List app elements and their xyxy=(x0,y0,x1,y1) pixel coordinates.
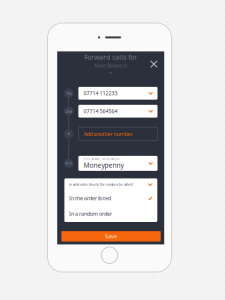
button[interactable]: In what order should the numbers be call… xyxy=(64,178,157,191)
button[interactable]: If no answer, send calls to: xyxy=(78,156,157,171)
button[interactable]: 07714 112233 xyxy=(78,87,157,100)
staticText: If no answer, send calls to: xyxy=(84,157,121,161)
staticText: Matt Bulwash xyxy=(94,62,127,69)
button[interactable]: Save xyxy=(61,231,161,241)
staticText: to: xyxy=(109,70,113,75)
staticText: In what order should the numbers be call… xyxy=(69,183,133,186)
staticText: + xyxy=(67,130,70,137)
button[interactable]: In a random order xyxy=(64,206,157,222)
button[interactable]: 07714 564564 xyxy=(78,105,157,118)
staticText: 07714 564564 xyxy=(84,108,118,115)
staticText: 2nd xyxy=(66,108,72,114)
staticText: Add another number xyxy=(84,130,133,137)
button[interactable]: Add another number xyxy=(78,127,157,140)
button[interactable]: Close xyxy=(146,57,161,72)
staticText: In a random order xyxy=(69,210,112,217)
staticText: Save xyxy=(105,233,117,240)
staticText: 1st xyxy=(66,91,71,96)
staticText: 07714 112233 xyxy=(84,90,118,97)
staticText: In the order listed xyxy=(69,195,111,202)
staticText: Moneypenny xyxy=(84,161,124,170)
staticText: Forward calls for xyxy=(84,53,137,62)
staticText: then xyxy=(65,162,72,165)
button[interactable]: In the order listed xyxy=(64,191,157,206)
